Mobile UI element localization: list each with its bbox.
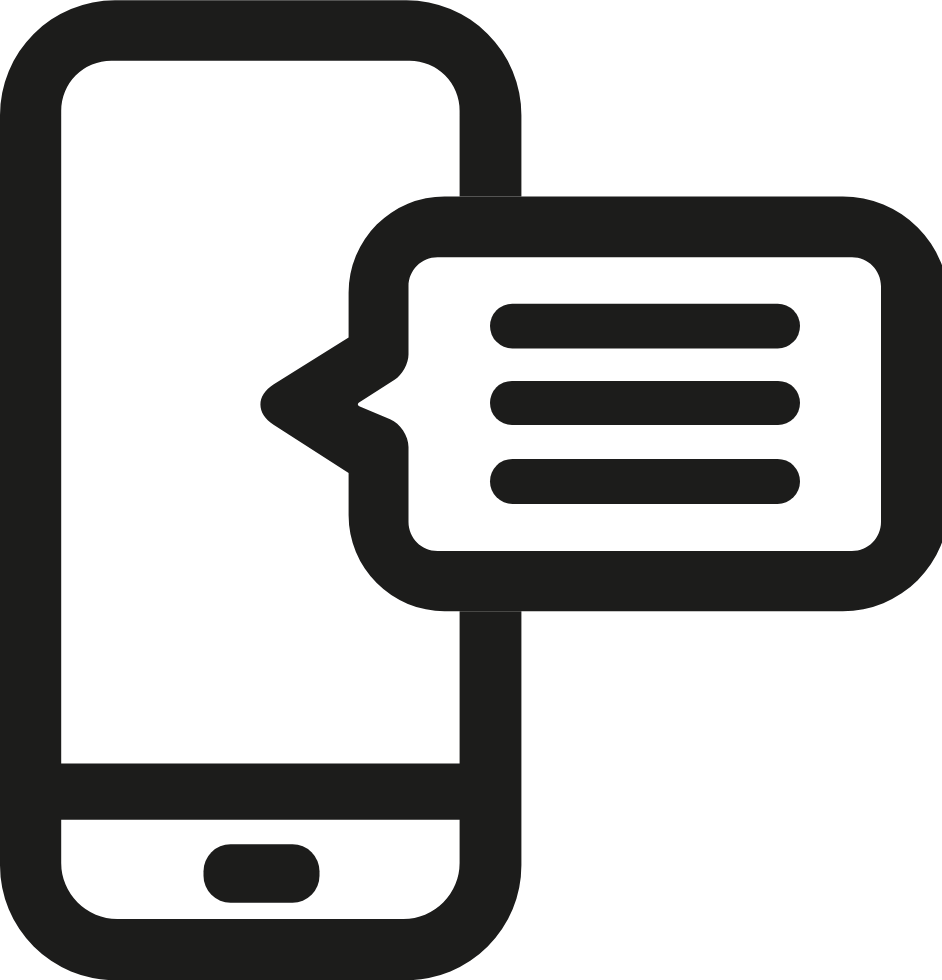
button[interactable]: Phone with message bubble xyxy=(0,0,942,980)
